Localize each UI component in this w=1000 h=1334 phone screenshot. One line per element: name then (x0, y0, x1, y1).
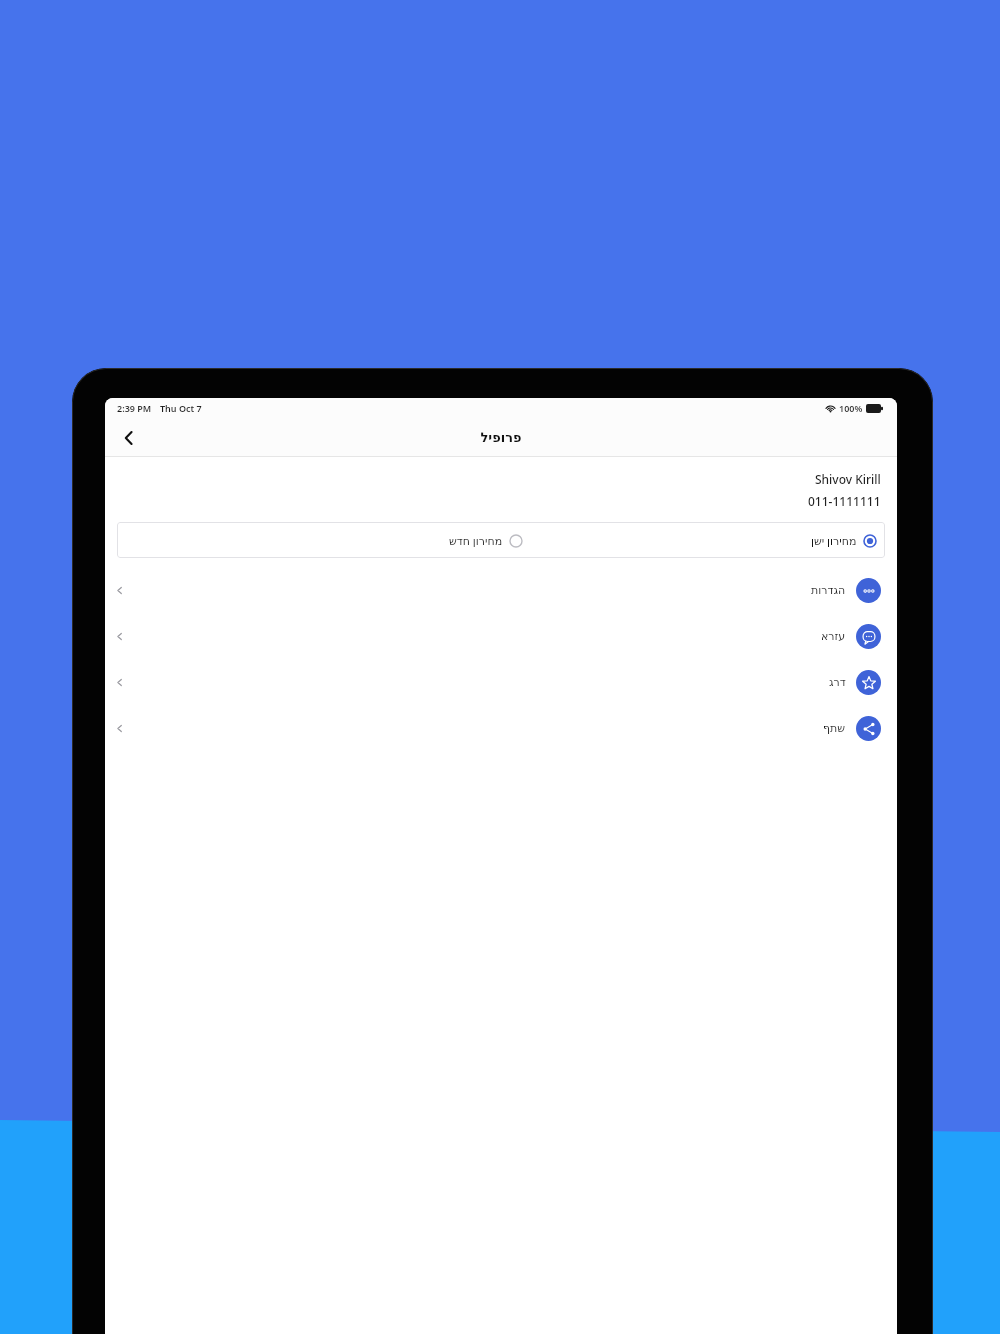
button[interactable]: דרג (105, 659, 897, 705)
staticText: הגדרות (811, 584, 846, 597)
button[interactable]: שתף (105, 705, 897, 751)
staticText: מחירון חדש (449, 533, 503, 548)
button[interactable]: Back (111, 420, 147, 456)
staticText: 2:39 PM (117, 402, 152, 414)
button[interactable]: מחירון ישן (809, 529, 879, 552)
staticText: מחירון ישן (811, 533, 857, 548)
staticText: עזרא (821, 630, 846, 643)
button[interactable]: מחירון חדש (447, 529, 525, 552)
staticText: שתף (823, 722, 846, 735)
staticText: דרג (829, 676, 846, 689)
staticText: Shivov Kirill (815, 471, 881, 487)
staticText: Thu Oct 7 (160, 402, 202, 414)
button[interactable]: עזרא (105, 613, 897, 659)
staticText: 100% (839, 402, 863, 414)
button[interactable]: הגדרות (105, 567, 897, 613)
staticText: פרופיל (480, 430, 522, 445)
staticText: 011-1111111 (808, 493, 881, 509)
